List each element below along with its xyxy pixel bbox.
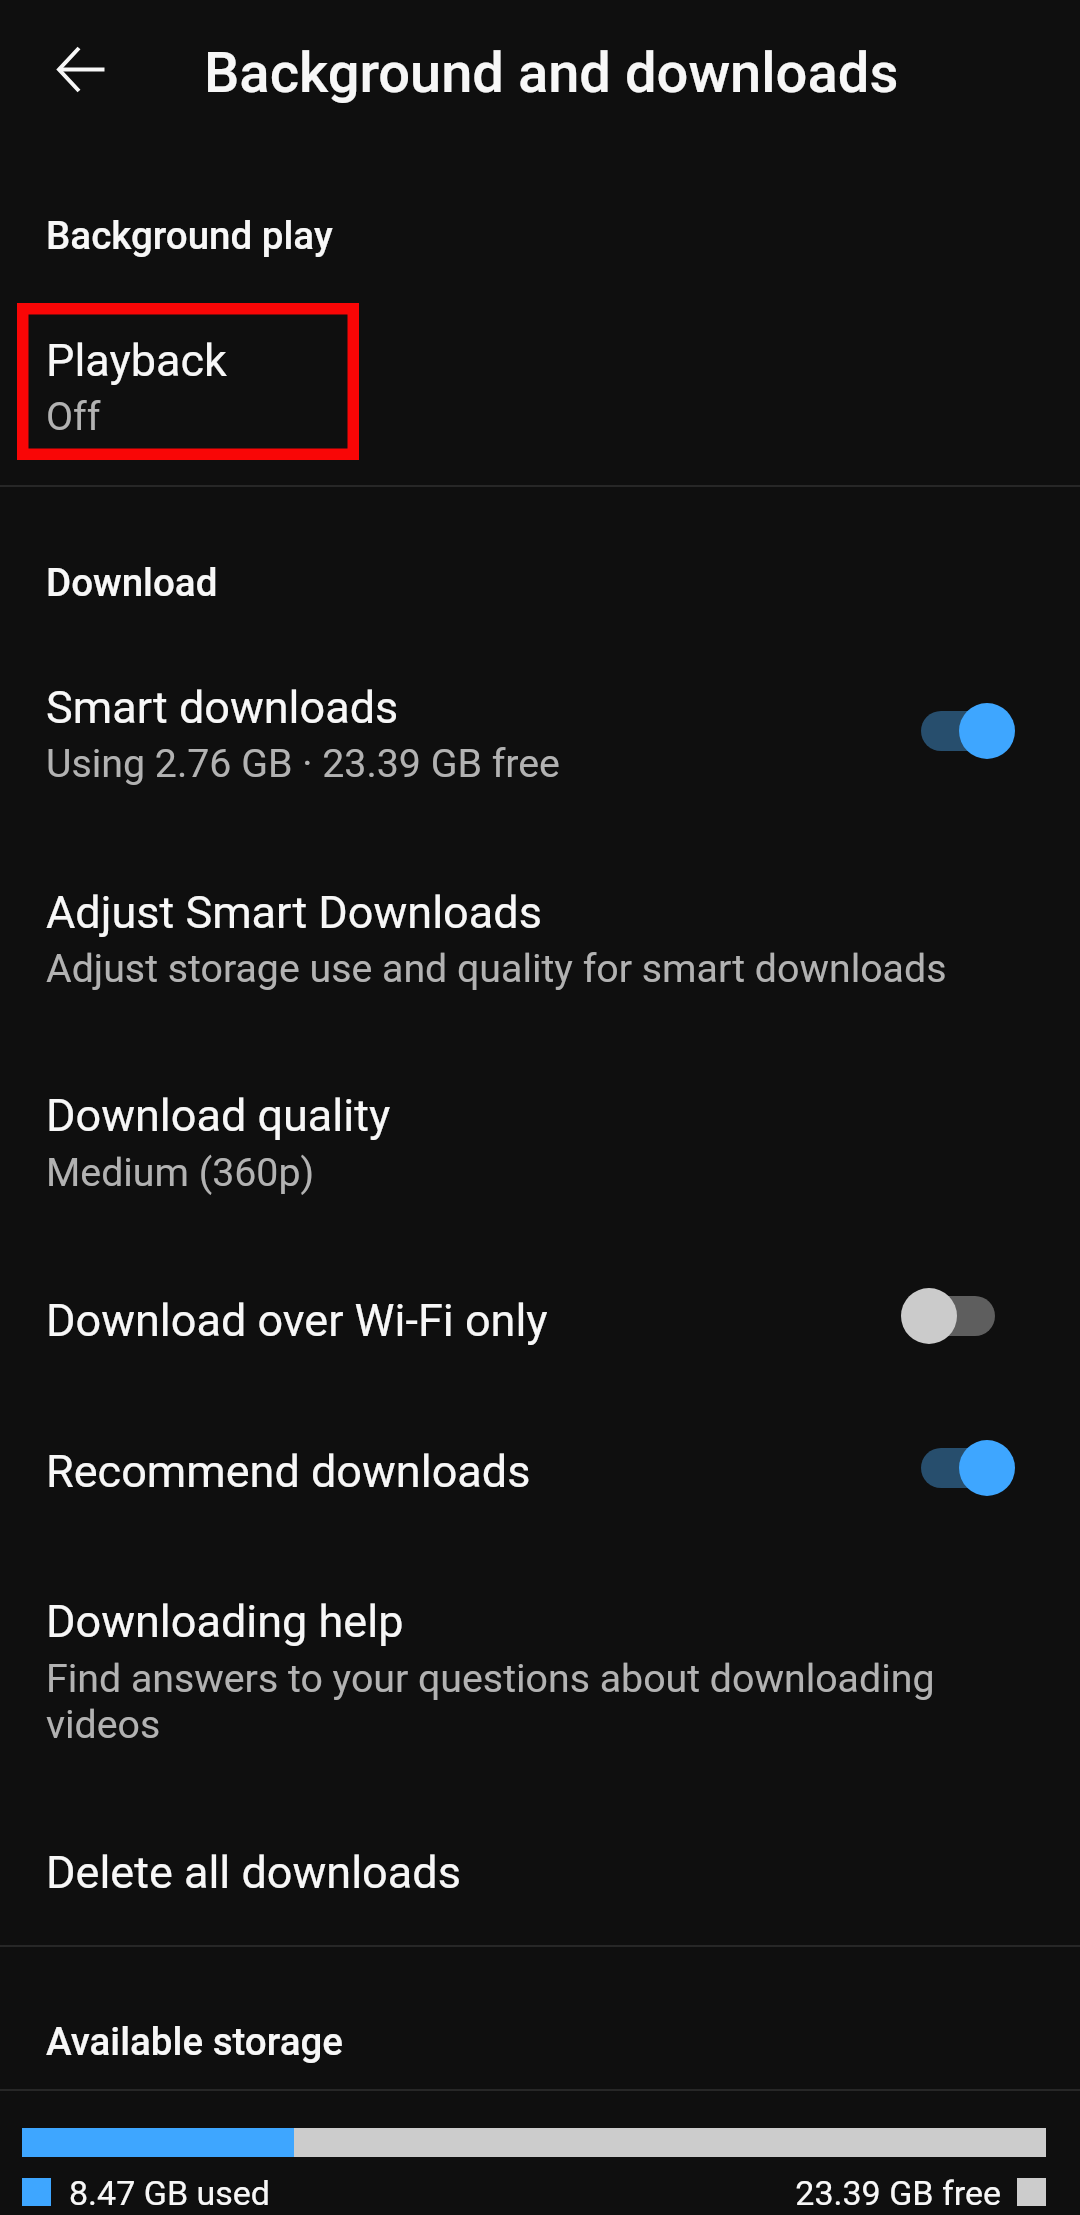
button[interactable] — [0, 1058, 1080, 1238]
staticText: Smart downloads — [46, 681, 399, 734]
staticText: 23.39 GB free — [600, 2173, 1001, 2213]
staticText: Playback — [46, 334, 227, 387]
staticText: Medium (360p) — [46, 1150, 315, 1196]
staticText: Background and downloads — [204, 40, 899, 106]
staticText: Download over Wi-Fi only — [46, 1294, 548, 1347]
staticText: Adjust storage use and quality for smart… — [46, 946, 947, 992]
staticText: Background play — [46, 213, 333, 258]
button[interactable] — [0, 1415, 1080, 1555]
button[interactable] — [0, 855, 1080, 1035]
button[interactable]: Toggle on — [891, 675, 1061, 787]
button[interactable] — [0, 1820, 1080, 1930]
staticText: Adjust Smart Downloads — [46, 886, 542, 939]
button[interactable] — [0, 650, 1080, 830]
staticText: Available storage — [46, 2019, 344, 2064]
staticText: 8.47 GB used — [69, 2173, 270, 2213]
button[interactable]: Toggle on — [891, 1412, 1061, 1524]
button[interactable] — [0, 1565, 1080, 1765]
staticText: Downloading help — [46, 1595, 404, 1648]
button[interactable] — [0, 300, 1080, 460]
button[interactable] — [0, 1265, 1080, 1405]
staticText: Download — [46, 560, 218, 605]
staticText: Download quality — [46, 1089, 391, 1142]
staticText: Using 2.76 GB · 23.39 GB free — [46, 741, 560, 787]
staticText: Delete all downloads — [46, 1846, 461, 1899]
staticText: Find answers to your questions about dow… — [46, 1656, 1006, 1748]
button[interactable]: Back — [27, 19, 139, 131]
staticText: Off — [46, 394, 101, 440]
button[interactable]: Toggle off — [873, 1260, 1043, 1372]
staticText: Recommend downloads — [46, 1445, 531, 1498]
